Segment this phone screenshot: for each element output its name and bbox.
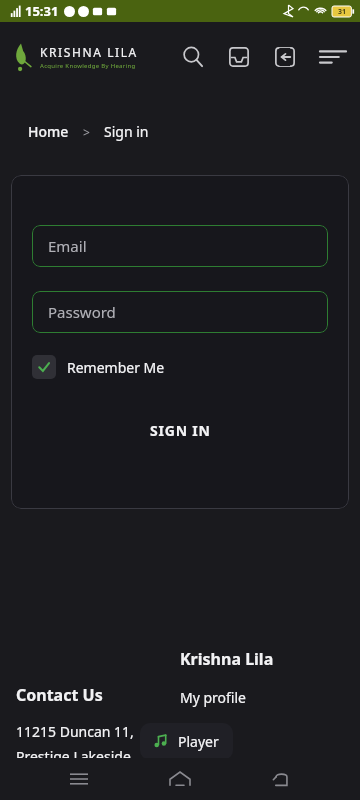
button[interactable]: Inbox: [222, 40, 256, 74]
button[interactable]: Search: [176, 40, 210, 74]
staticText: Contact Us: [16, 684, 103, 706]
button[interactable]: My profile: [180, 688, 246, 707]
staticText: 11215 Duncan 11,: [16, 722, 134, 741]
button[interactable]: Player: [140, 723, 233, 760]
staticText: Prestige Lakeside: [16, 747, 131, 766]
staticText: Acquire Knowledge By Hearing: [40, 62, 136, 70]
button[interactable]: Remember Me: [32, 355, 165, 379]
staticText: My profile: [180, 688, 246, 707]
button[interactable]: Password: [32, 291, 328, 333]
staticText: Remember Me: [67, 358, 165, 377]
button[interactable]: Sign in: [268, 40, 302, 74]
staticText: SIGN IN: [150, 421, 211, 440]
staticText: KRISHNA LILA: [40, 44, 138, 60]
staticText: 15:31: [25, 2, 59, 20]
staticText: Email: [48, 236, 87, 256]
staticText: >: [83, 124, 90, 140]
button[interactable]: Home: [28, 122, 69, 141]
staticText: 31: [338, 7, 347, 17]
staticText: Password: [48, 302, 116, 322]
button[interactable]: Home: [158, 758, 202, 800]
button[interactable]: Recents: [57, 758, 101, 800]
staticText: Sign in: [104, 122, 149, 141]
button[interactable]: Email: [32, 225, 328, 267]
button[interactable]: SIGN IN: [32, 413, 328, 447]
button[interactable]: KRISHNA LILA: [12, 42, 138, 72]
staticText: Krishna Lila: [180, 648, 274, 670]
button[interactable]: Menu: [316, 40, 350, 74]
staticText: Home: [28, 122, 69, 141]
button[interactable]: Back: [259, 758, 303, 800]
staticText: Player: [178, 732, 219, 751]
